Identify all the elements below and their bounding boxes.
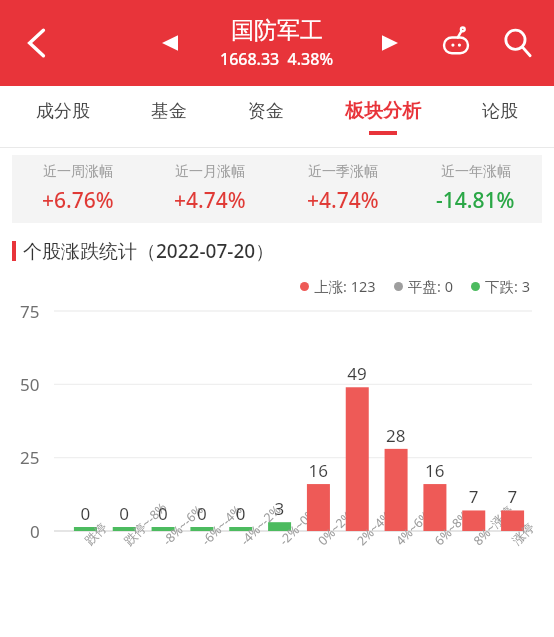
staticText: -14.81%: [436, 186, 515, 215]
button[interactable]: 板块分析: [339, 86, 427, 148]
staticText: 近一月涨幅: [175, 163, 245, 181]
button[interactable]: AI assistant: [430, 17, 482, 69]
staticText: +4.74%: [174, 186, 246, 215]
button[interactable]: 论股: [476, 86, 524, 148]
button[interactable]: 近一年涨幅: [409, 163, 542, 215]
staticText: 个股涨跌统计（2022-07-20）: [23, 238, 275, 264]
button[interactable]: 国防军工: [220, 16, 334, 70]
staticText: 板块分析: [345, 99, 421, 123]
staticText: 资金: [248, 100, 284, 123]
button[interactable]: 平盘: 0: [394, 276, 453, 296]
button[interactable]: Search: [492, 17, 544, 69]
staticText: +6.76%: [42, 186, 114, 215]
staticText: 下跌: 3: [485, 276, 530, 296]
button[interactable]: Previous sector: [148, 21, 192, 65]
staticText: 论股: [482, 100, 518, 123]
staticText: 成分股: [36, 100, 90, 123]
button[interactable]: 成分股: [30, 86, 96, 148]
button[interactable]: Next sector: [368, 21, 412, 65]
staticText: 平盘: 0: [408, 276, 453, 296]
button[interactable]: 上涨: 123: [300, 276, 376, 296]
staticText: 基金: [151, 100, 187, 123]
button[interactable]: 资金: [242, 86, 290, 148]
button[interactable]: 下跌: 3: [471, 276, 530, 296]
staticText: 1668.33 4.38%: [220, 48, 334, 70]
staticText: 近一年涨幅: [441, 163, 511, 181]
staticText: 国防军工: [231, 16, 323, 45]
button[interactable]: 近一周涨幅: [12, 163, 144, 215]
button[interactable]: 近一月涨幅: [144, 163, 276, 215]
button[interactable]: 近一季涨幅: [276, 163, 409, 215]
staticText: 近一季涨幅: [308, 163, 378, 181]
staticText: 上涨: 123: [314, 276, 376, 296]
button[interactable]: Back: [8, 14, 66, 72]
button[interactable]: 基金: [145, 86, 193, 148]
staticText: +4.74%: [307, 186, 379, 215]
staticText: 近一周涨幅: [43, 163, 113, 181]
